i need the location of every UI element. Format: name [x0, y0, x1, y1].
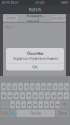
button[interactable]: е — [24, 83, 29, 90]
button[interactable]: 🌐 — [10, 110, 15, 117]
button[interactable]: ц — [7, 83, 12, 90]
button[interactable]: Отправить — [52, 16, 66, 21]
staticText: и — [34, 102, 36, 107]
staticText: ч — [17, 102, 19, 107]
staticText: 68% — [61, 0, 68, 5]
staticText: е — [25, 84, 27, 89]
staticText: ц — [8, 84, 10, 89]
staticText: т — [40, 102, 42, 107]
button[interactable]: н — [30, 83, 35, 90]
button[interactable]: п — [26, 92, 31, 99]
staticText: ь — [45, 102, 47, 107]
staticText: Пробел — [30, 112, 41, 115]
button[interactable]: OK — [6, 63, 64, 70]
staticText: OK — [32, 64, 38, 70]
button[interactable]: Поиск — [56, 110, 69, 117]
button[interactable]: э — [64, 92, 69, 99]
button[interactable]: б — [50, 101, 54, 108]
staticText: Отправить — [52, 16, 66, 20]
staticText: а — [21, 93, 23, 98]
staticText: Текст — [4, 24, 14, 29]
button[interactable]: а — [20, 92, 25, 99]
button[interactable]: ⌫ — [61, 101, 69, 108]
button[interactable]: ш — [41, 83, 46, 90]
staticText: ф — [2, 93, 5, 98]
staticText: Поиск — [58, 112, 66, 115]
button[interactable]: Отмена — [3, 16, 18, 21]
button[interactable]: л — [45, 92, 50, 99]
button[interactable]: с — [21, 101, 26, 108]
button[interactable]: о — [39, 92, 44, 99]
staticText: н — [31, 84, 33, 89]
button[interactable]: я — [10, 101, 15, 108]
button[interactable]: ы — [7, 92, 13, 99]
button[interactable]: х — [58, 83, 63, 90]
staticText: ⌫ — [63, 103, 67, 106]
staticText: ЮЛА — [28, 6, 41, 13]
staticText: 123 — [2, 112, 8, 115]
staticText: Комментарий — [26, 13, 43, 24]
button[interactable]: р — [32, 92, 38, 99]
staticText: р — [34, 93, 36, 98]
button[interactable]: ю — [55, 101, 60, 108]
staticText: л — [46, 93, 48, 98]
staticText: 21:43 — [35, 0, 44, 5]
staticText: в — [15, 93, 17, 98]
button[interactable]: ф — [1, 92, 6, 99]
staticText: 🌐 — [11, 112, 14, 115]
staticText: ш — [42, 84, 46, 89]
staticText: с — [23, 102, 25, 107]
staticText: Отмена — [6, 16, 15, 20]
staticText: у — [14, 84, 16, 89]
button[interactable]: у — [12, 83, 17, 90]
staticText: MTS RUS — [2, 0, 18, 5]
button[interactable]: ъ — [64, 83, 69, 90]
staticText: э — [65, 93, 67, 98]
button[interactable]: м — [27, 101, 32, 108]
staticText: ъ — [66, 84, 68, 89]
staticText: щ — [47, 84, 51, 89]
button[interactable]: ч — [16, 101, 20, 108]
staticText: ⇧ — [4, 103, 6, 106]
staticText: г — [37, 84, 39, 89]
staticText: Ошибка — [27, 50, 43, 56]
button[interactable]: и — [33, 101, 37, 108]
staticText: о — [40, 93, 42, 98]
button[interactable]: Пробел — [16, 110, 55, 117]
staticText: к — [20, 84, 22, 89]
staticText: ы — [8, 93, 11, 98]
button[interactable]: з — [53, 83, 58, 90]
button[interactable]: 123 — [1, 110, 9, 117]
staticText: б — [51, 102, 53, 107]
button[interactable]: г — [35, 83, 40, 90]
staticText: з — [54, 84, 56, 89]
staticText: я — [11, 102, 13, 107]
staticText: х — [60, 84, 62, 89]
button[interactable]: в — [13, 92, 19, 99]
button[interactable]: д — [51, 92, 56, 99]
button[interactable]: к — [18, 83, 23, 90]
button[interactable]: ж — [57, 92, 63, 99]
button[interactable]: й — [1, 83, 6, 90]
staticText: й — [2, 84, 4, 89]
button[interactable]: ь — [44, 101, 49, 108]
staticText: д — [53, 93, 55, 98]
button[interactable]: т — [38, 101, 43, 108]
staticText: ю — [56, 102, 59, 107]
staticText: Не удалось отправить сообщение — [12, 57, 57, 60]
staticText: ж — [59, 93, 62, 98]
staticText: м — [28, 102, 31, 107]
button[interactable]: щ — [47, 83, 52, 90]
staticText: п — [28, 93, 30, 98]
